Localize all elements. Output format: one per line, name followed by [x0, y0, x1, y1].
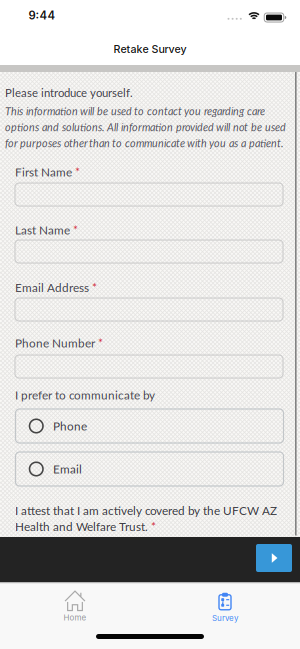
button[interactable]: Email [15, 452, 283, 486]
staticText: for purposes other than to communicate w… [5, 137, 284, 149]
button[interactable]: Survey [165, 584, 285, 630]
staticText: Phone [53, 419, 87, 433]
staticText: * [75, 165, 80, 179]
button[interactable]: Phone Number [15, 355, 283, 378]
staticText: Survey [212, 613, 238, 623]
staticText: * [73, 223, 78, 237]
staticText: Health and Welfare Trust. [15, 519, 148, 534]
button[interactable]: Last Name [15, 240, 283, 263]
staticText: Last Name [15, 223, 70, 237]
staticText: Home [63, 613, 86, 622]
staticText: Email Address [15, 280, 89, 295]
button[interactable]: Home [15, 583, 135, 629]
staticText: options and solutions. All information p… [5, 121, 286, 133]
staticText: * [151, 519, 156, 534]
button[interactable]: Next [256, 544, 292, 572]
staticText: * [92, 280, 97, 295]
staticText: Email [53, 462, 82, 476]
staticText: * [98, 336, 103, 350]
staticText: Phone Number [15, 336, 95, 350]
staticText: I prefer to communicate by [15, 388, 155, 402]
staticText: Please introduce yourself. [5, 86, 133, 99]
button[interactable]: Phone [15, 409, 283, 443]
button[interactable]: First Name [15, 183, 283, 206]
button[interactable]: Email Address [15, 298, 283, 321]
staticText: Retake Survey [113, 42, 186, 55]
staticText: 9:44 [28, 9, 55, 22]
staticText: First Name [15, 165, 72, 179]
staticText: This information will be used to contact… [5, 105, 265, 117]
staticText: I attest that I am actively covered by t… [15, 503, 277, 518]
